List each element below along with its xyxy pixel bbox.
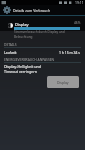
staticText: 19:11 <box>75 0 84 5</box>
staticText: ENERGIEVERBRAUCH ANPASSEN <box>4 57 55 61</box>
staticText: Display <box>57 80 69 85</box>
staticText: DETAILS <box>4 42 17 46</box>
staticText: Display-Helligkeit und Timeout verringer… <box>4 64 41 74</box>
staticText: Details zum Verbrauch <box>13 8 51 13</box>
staticText: 46% <box>74 21 81 25</box>
button[interactable]: Display <box>47 76 79 88</box>
staticText: 1 h 15 m 34 s <box>59 50 80 55</box>
button[interactable]: Laufzeit <box>0 48 85 55</box>
staticText: Laufzeit <box>4 50 17 55</box>
staticText: Display <box>15 22 29 27</box>
button[interactable]: Navigate up <box>0 5 13 15</box>
staticText: Stromverbrauch durch Display und Beleuch… <box>14 30 65 39</box>
